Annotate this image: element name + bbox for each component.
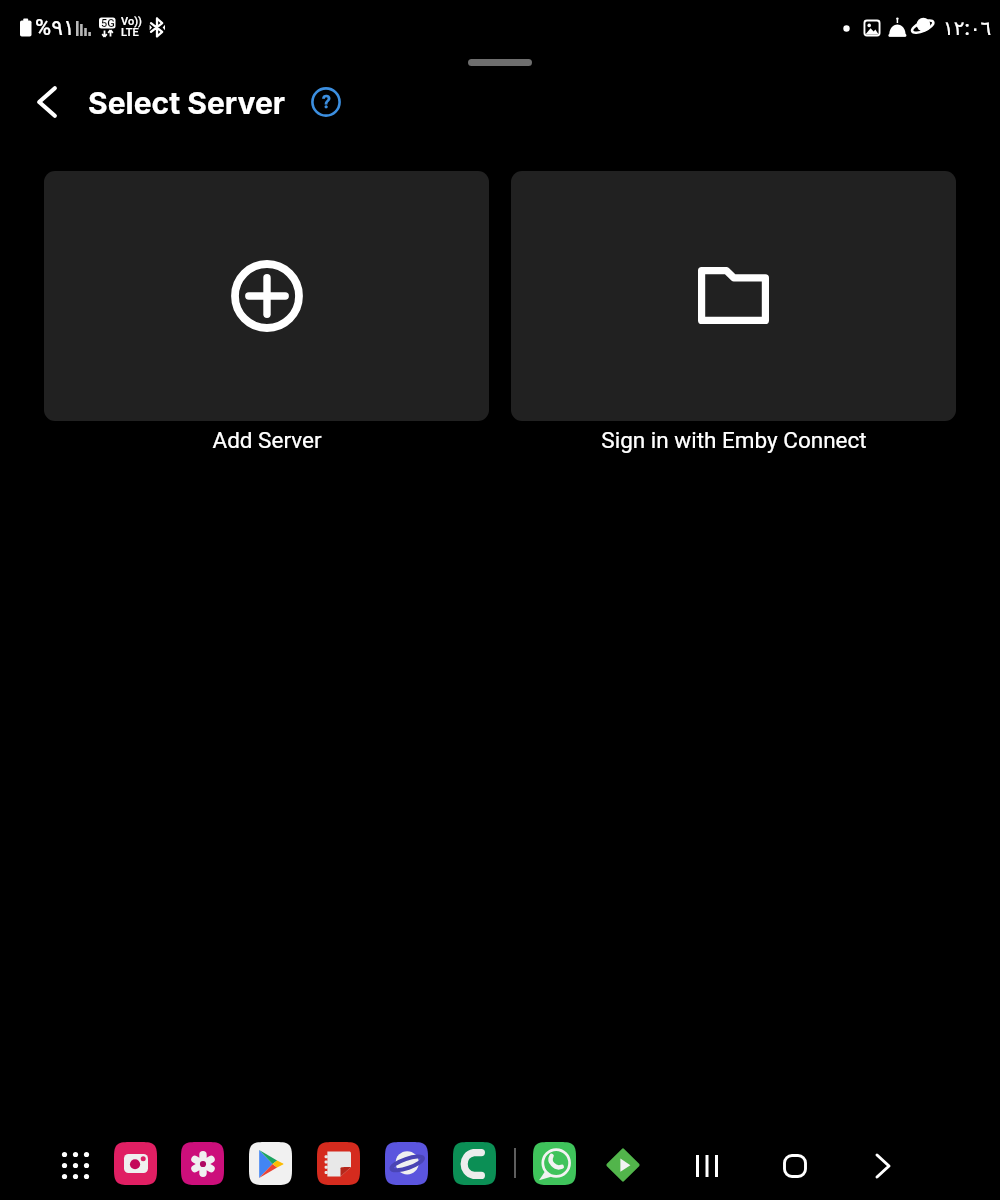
button[interactable]: Gallery [181, 1142, 224, 1185]
button[interactable]: Camera [114, 1142, 157, 1185]
button[interactable]: Sign in with Emby Connect [511, 171, 956, 453]
staticText: Select Server [88, 85, 285, 121]
button[interactable]: Play Store [249, 1142, 292, 1185]
button[interactable]: Add Server [44, 171, 489, 453]
button[interactable]: Apps [58, 1148, 93, 1183]
staticText: LTE [121, 26, 139, 39]
button[interactable]: Back [857, 1140, 909, 1192]
button[interactable]: Emby [601, 1143, 644, 1186]
button[interactable]: Back [23, 78, 71, 126]
staticText: ? [322, 91, 331, 112]
button[interactable]: Samsung Notes [317, 1142, 360, 1185]
staticText: ١٢:٠٦ [943, 16, 992, 39]
button[interactable]: Internet [385, 1142, 428, 1185]
staticText: Vo)) [121, 15, 142, 28]
button[interactable]: WhatsApp [533, 1142, 576, 1185]
staticText: Sign in with Emby Connect [601, 427, 867, 453]
button[interactable]: Home [769, 1140, 821, 1192]
staticText: %٩١ [35, 15, 75, 41]
button[interactable]: Recent apps [681, 1140, 733, 1192]
button[interactable]: Help [306, 82, 346, 122]
staticText: 5G [101, 17, 115, 30]
button[interactable]: Phone [453, 1142, 496, 1185]
staticText: Add Server [212, 427, 322, 453]
